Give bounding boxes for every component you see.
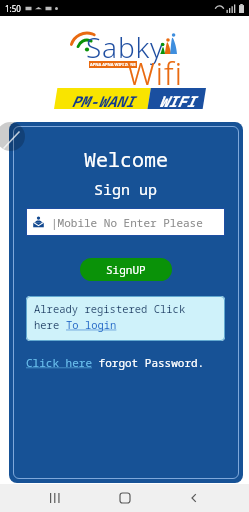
- button[interactable]: Back: [179, 484, 209, 512]
- staticText: APNA APNA WIFI ZONE: [90, 62, 136, 67]
- staticText: PM-WANI: [71, 91, 135, 111]
- staticText: WIFI: [159, 91, 196, 111]
- staticText: Click here: [26, 355, 92, 370]
- staticText: Sabky: [86, 28, 165, 66]
- staticText: SignUP: [106, 262, 146, 277]
- staticText: To login: [66, 318, 117, 332]
- button[interactable]: Home: [110, 484, 140, 512]
- button[interactable]: SignUP: [80, 258, 172, 281]
- button[interactable]: |Mobile No Enter Please: [33, 208, 219, 236]
- staticText: Welcome: [84, 146, 168, 173]
- button[interactable]: Recents: [40, 484, 70, 512]
- staticText: Already registered Click: [34, 302, 186, 316]
- staticText: |Mobile No Enter Please: [51, 215, 203, 230]
- button[interactable]: Click here: [26, 355, 225, 370]
- staticText: forgot Password.: [92, 355, 205, 370]
- staticText: Sign up: [94, 179, 158, 199]
- staticText: Wifi: [127, 52, 183, 94]
- button[interactable]: Already registered Click: [26, 296, 225, 341]
- staticText: here: [34, 318, 66, 332]
- staticText: 1:50: [5, 3, 21, 14]
